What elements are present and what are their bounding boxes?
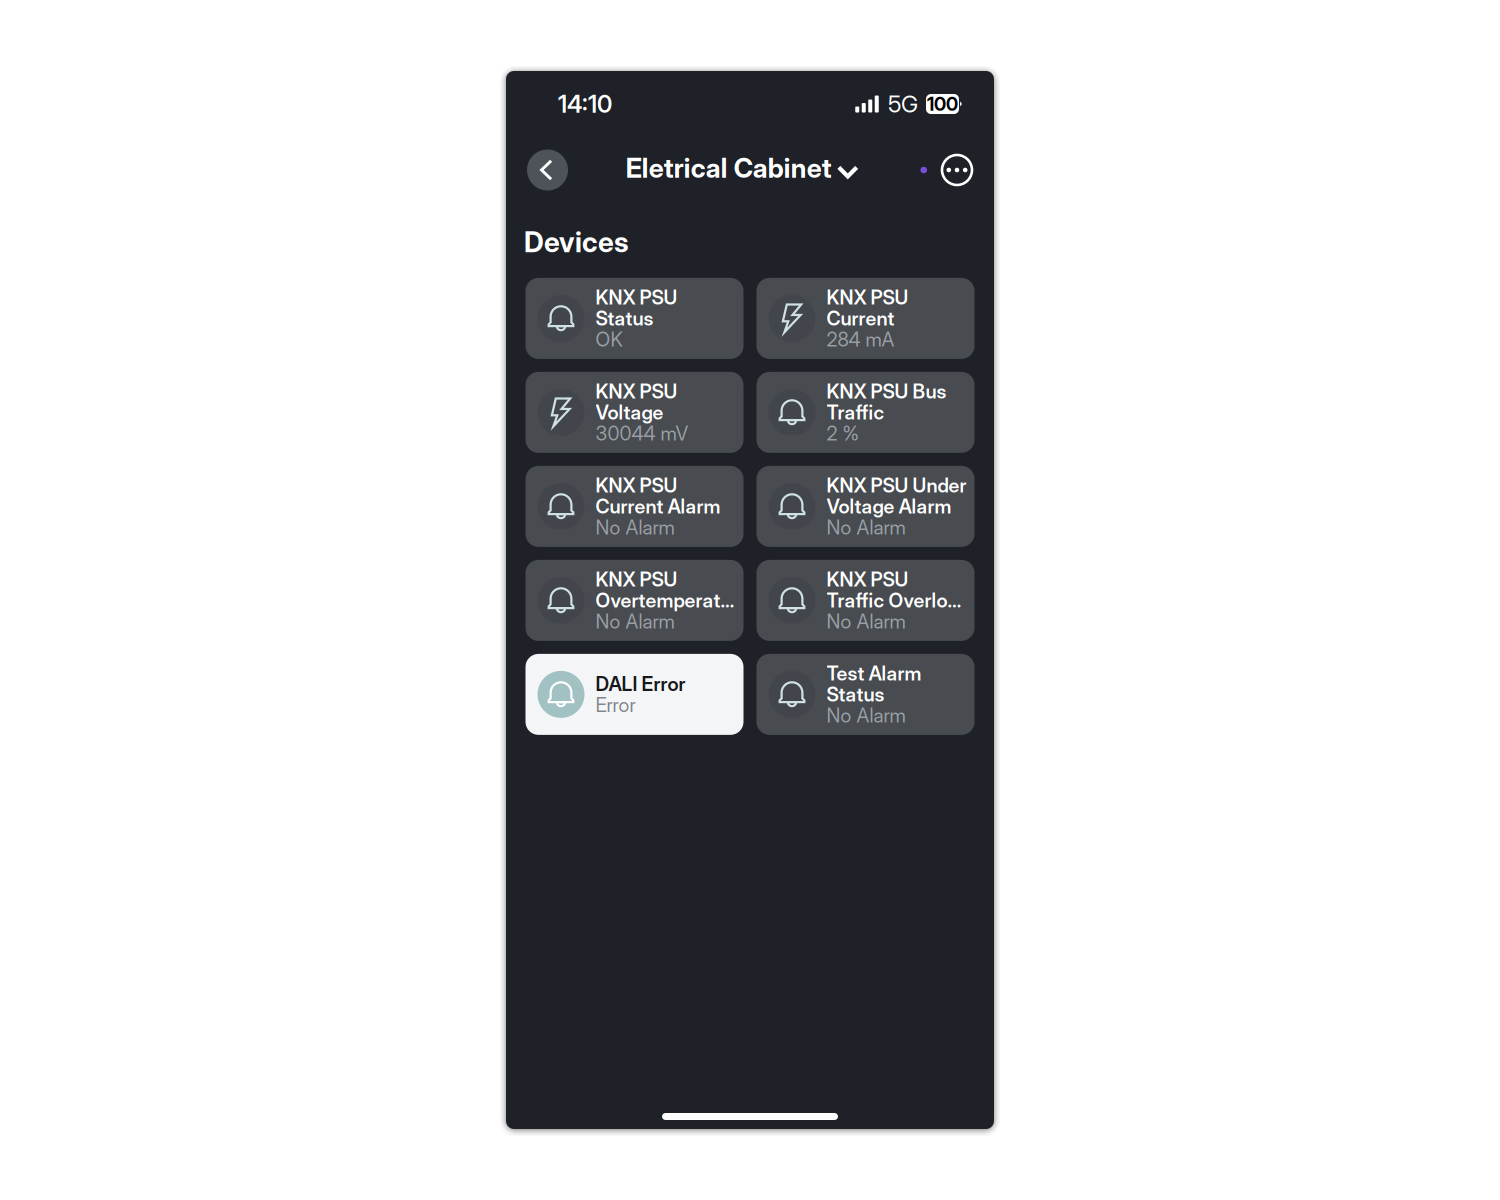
staticText: Voltage Alarm [826,495,951,518]
staticText: No Alarm [826,704,905,727]
staticText: KNX PSU [595,379,677,403]
staticText: Traffic Overlo… [826,589,961,612]
staticText: Current Alarm [595,495,720,518]
button[interactable]: KNX PSU Under [756,466,974,547]
staticText: KNX PSU [595,285,677,309]
staticText: KNX PSU [595,473,677,497]
staticText: OK [595,328,622,351]
staticText: Voltage [595,401,663,424]
staticText: Current [826,307,894,330]
staticText: KNX PSU [595,567,677,591]
button[interactable]: Back [527,149,568,190]
button[interactable]: More options [941,154,973,186]
staticText: KNX PSU [826,285,908,309]
button[interactable]: KNX PSU [756,278,974,359]
staticText: Status [826,683,884,706]
staticText: No Alarm [595,610,674,633]
staticText: KNX PSU [826,567,908,591]
staticText: 2 % [826,422,858,445]
button[interactable]: KNX PSU [525,466,743,547]
staticText: No Alarm [595,516,674,539]
button[interactable]: Test Alarm [756,654,974,735]
button[interactable]: KNX PSU Bus [756,372,974,453]
staticText: Devices [524,225,629,259]
staticText: Traffic [826,401,884,424]
button[interactable]: KNX PSU [525,278,743,359]
staticText: No Alarm [826,516,905,539]
button[interactable]: Eletrical Cabinet [628,154,861,186]
button[interactable]: KNX PSU [525,372,743,453]
staticText: Test Alarm [826,661,921,685]
staticText: KNX PSU Bus [826,379,946,403]
staticText: Error [595,693,635,717]
staticText: 284 mA [826,328,894,351]
staticText: 30044 mV [595,422,688,445]
staticText: KNX PSU Under [826,473,966,497]
staticText: No Alarm [826,610,905,633]
button[interactable]: KNX PSU [756,560,974,641]
button[interactable]: KNX PSU [525,560,743,641]
staticText: Eletrical Cabinet [626,152,832,184]
button[interactable]: DALI Error [525,654,743,735]
staticText: 100 [927,93,958,115]
staticText: 14:10 [558,89,612,118]
staticText: Overtemperat… [595,589,734,612]
staticText: Status [595,307,653,330]
staticText: 5G [888,90,918,118]
staticText: DALI Error [595,672,685,696]
